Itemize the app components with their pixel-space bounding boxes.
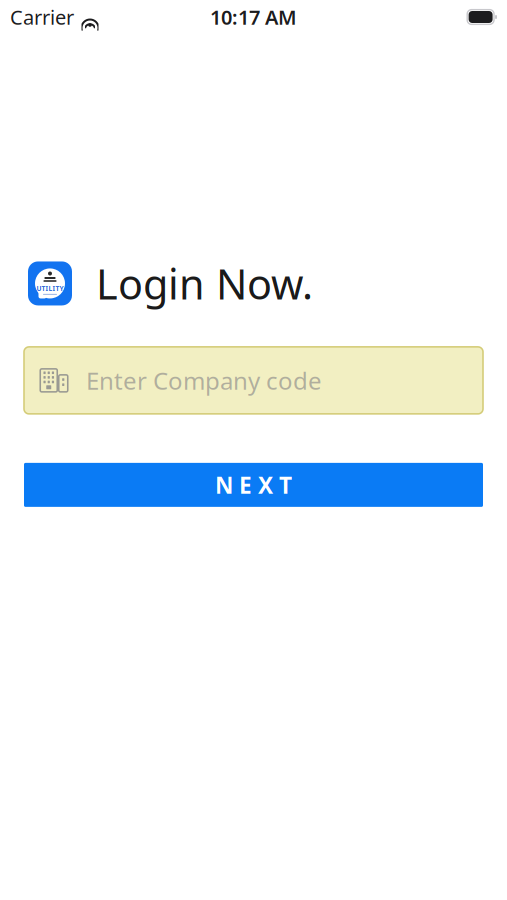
- staticText: Login Now.: [96, 256, 313, 311]
- button[interactable]: N E X T: [24, 463, 483, 507]
- button[interactable]: Enter Company code: [24, 347, 483, 414]
- staticText: Carrier: [10, 4, 74, 30]
- staticText: Enter Company code: [86, 364, 322, 396]
- staticText: UTILITY: [36, 284, 63, 293]
- staticText: 10:17 AM: [210, 4, 297, 30]
- staticText: N E X T: [215, 470, 292, 500]
